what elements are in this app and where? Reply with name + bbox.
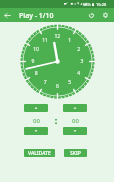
staticText: SKIP [70,150,81,157]
staticText: Play - 1/10 [19,11,54,21]
button[interactable]: Back [0,8,15,22]
staticText: 15:28 [96,2,107,7]
staticText: 00 [33,117,40,125]
button[interactable]: Decrease [63,127,87,135]
staticText: VALIDATE [28,150,51,157]
staticText: 00 [72,117,79,125]
staticText: 64% [83,2,91,7]
button[interactable]: Decrease [24,127,48,135]
button[interactable]: Increase [24,104,48,112]
button[interactable]: SKIP [64,149,87,157]
button[interactable]: Settings [98,8,112,22]
button[interactable]: Replay [85,8,98,22]
button[interactable]: VALIDATE [24,149,55,157]
button[interactable]: Increase [63,104,87,112]
